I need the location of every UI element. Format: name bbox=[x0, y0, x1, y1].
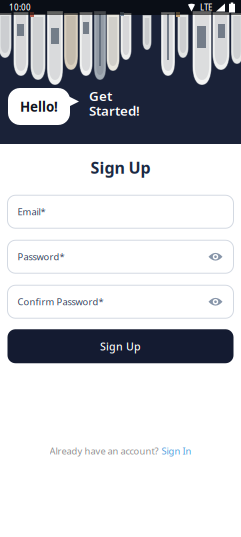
staticText: LTE bbox=[200, 2, 212, 13]
button[interactable]: Sign In bbox=[161, 445, 191, 457]
button[interactable]: Email* bbox=[7, 195, 233, 228]
staticText: Already have an account? bbox=[49, 445, 158, 457]
staticText: Get Started! bbox=[89, 87, 140, 119]
staticText: Sign In bbox=[161, 445, 191, 457]
button[interactable]: Password* bbox=[7, 240, 233, 273]
staticText: Sign Up bbox=[90, 157, 150, 178]
button[interactable]: Show password bbox=[208, 297, 222, 306]
staticText: 10:00 bbox=[9, 2, 31, 13]
button[interactable]: Confirm Password* bbox=[7, 285, 233, 318]
staticText: Email* bbox=[17, 206, 45, 218]
button[interactable]: Show password bbox=[208, 252, 222, 261]
staticText: Sign Up bbox=[100, 339, 141, 353]
button[interactable]: Sign Up bbox=[7, 329, 233, 363]
staticText: Confirm Password* bbox=[17, 296, 103, 308]
staticText: Hello! bbox=[20, 98, 58, 115]
staticText: Password* bbox=[17, 251, 64, 263]
